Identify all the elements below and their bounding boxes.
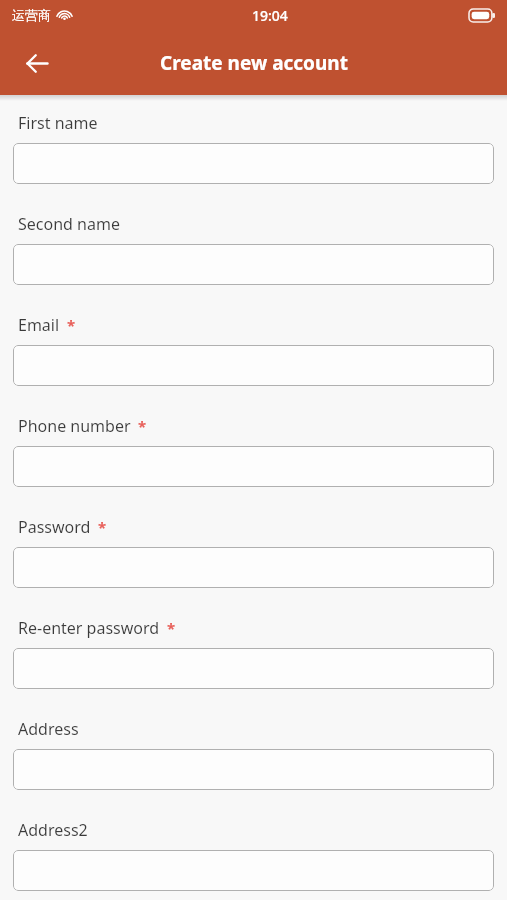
- staticText: *: [67, 315, 76, 335]
- staticText: *: [167, 618, 176, 638]
- staticText: Address2: [18, 819, 88, 841]
- staticText: Email: [18, 314, 60, 336]
- staticText: 运营商: [12, 7, 51, 23]
- staticText: Password: [18, 516, 91, 538]
- staticText: Re-enter password: [18, 617, 160, 639]
- staticText: First name: [18, 112, 98, 134]
- button[interactable]: [13, 749, 494, 790]
- button[interactable]: [13, 446, 494, 487]
- button[interactable]: [13, 345, 494, 386]
- staticText: Phone number: [18, 415, 131, 437]
- button[interactable]: [13, 850, 494, 891]
- staticText: Address: [18, 718, 79, 740]
- button[interactable]: [13, 648, 494, 689]
- button[interactable]: [13, 547, 494, 588]
- button[interactable]: [13, 143, 494, 184]
- staticText: Second name: [18, 213, 120, 235]
- staticText: *: [138, 416, 147, 436]
- button[interactable]: Back: [14, 40, 60, 86]
- staticText: *: [98, 517, 107, 537]
- button[interactable]: [13, 244, 494, 285]
- staticText: 19:04: [252, 6, 288, 25]
- staticText: Create new account: [160, 50, 348, 76]
